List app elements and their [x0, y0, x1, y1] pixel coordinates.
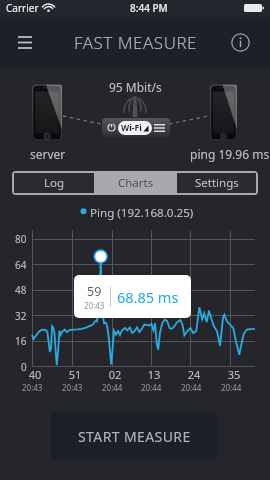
staticText: Charts	[118, 175, 154, 191]
staticText: 0	[21, 360, 27, 374]
staticText: 59	[87, 283, 102, 300]
staticText: 20:44	[102, 382, 123, 393]
staticText: Wi-Fi	[121, 122, 142, 134]
staticText: 20:44	[141, 382, 162, 393]
staticText: 40	[23, 367, 42, 382]
button[interactable]: Settings	[177, 173, 256, 193]
button[interactable]: Info	[225, 27, 255, 57]
staticText: 16	[15, 334, 27, 348]
staticText: 13	[142, 367, 161, 382]
staticText: server	[30, 146, 66, 162]
staticText: FAST MEASURE	[74, 31, 197, 54]
staticText: 02	[103, 367, 122, 382]
staticText: ping 19.96 ms	[190, 146, 270, 162]
staticText: START MEASURE	[78, 427, 191, 446]
staticText: 20:43	[62, 382, 83, 393]
staticText: 20:44	[181, 382, 202, 393]
staticText: 32	[15, 309, 27, 323]
staticText: 64	[15, 258, 27, 272]
staticText: Settings	[195, 175, 239, 191]
staticText: 24	[182, 367, 201, 382]
staticText: 80	[15, 232, 27, 246]
staticText: Carrier	[6, 1, 39, 15]
staticText: Ping (192.168.0.25)	[90, 205, 194, 221]
staticText: 20:44	[221, 382, 242, 393]
button[interactable]: Charts	[96, 173, 175, 193]
staticText: 95 Mbit/s	[109, 79, 162, 95]
button[interactable]: Log	[14, 173, 94, 193]
staticText: 48	[15, 283, 27, 297]
staticText: 20:43	[22, 382, 43, 393]
button[interactable]: START MEASURE	[51, 413, 218, 459]
staticText: 35	[222, 367, 241, 382]
staticText: 20:43	[84, 300, 105, 311]
staticText: 8:44 PM	[130, 1, 168, 15]
staticText: Log	[44, 175, 65, 191]
button[interactable]: Menu	[10, 27, 40, 57]
staticText: 51	[63, 367, 82, 382]
staticText: 68.85 ms	[117, 287, 179, 307]
